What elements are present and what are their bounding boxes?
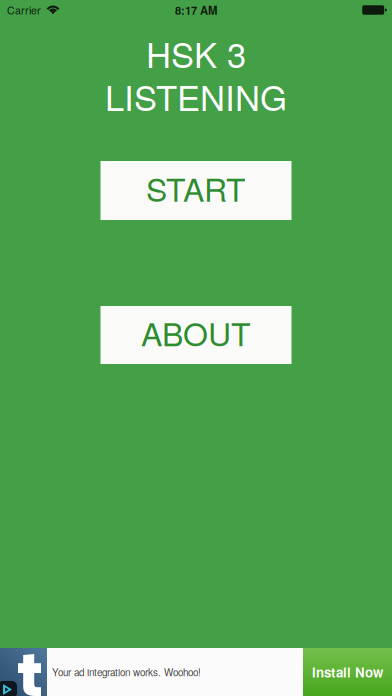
button[interactable]: ABOUT xyxy=(100,306,291,364)
staticText: START xyxy=(146,165,246,211)
staticText: Install Now xyxy=(312,662,383,682)
staticText: 8:17 AM xyxy=(175,2,217,18)
staticText: LISTENING xyxy=(105,71,287,121)
staticText: HSK 3 xyxy=(146,28,246,78)
staticText: Carrier xyxy=(7,2,41,18)
button[interactable]: Your ad integration works. Woohoo! xyxy=(0,648,392,696)
staticText: ABOUT xyxy=(141,310,251,355)
button[interactable]: START xyxy=(100,161,291,220)
staticText: Your ad integration works. Woohoo! xyxy=(52,665,201,679)
